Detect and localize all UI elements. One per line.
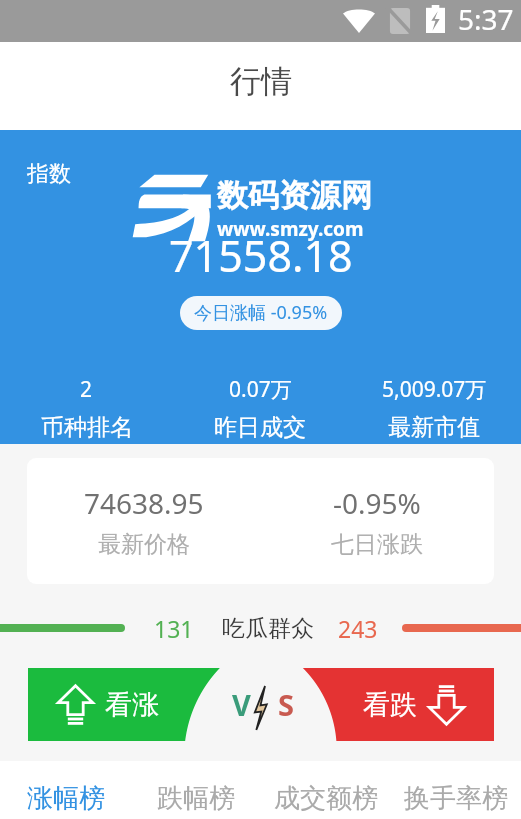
staticText: 看跌: [363, 688, 417, 722]
staticText: 71558.18: [169, 226, 353, 285]
staticText: 昨日成交: [214, 413, 306, 442]
staticText: 5:37: [458, 0, 514, 38]
staticText: 0.07万: [229, 375, 292, 404]
button[interactable]: 74638.95: [27, 458, 494, 584]
button[interactable]: 看跌: [324, 668, 494, 741]
staticText: 最新市值: [388, 413, 480, 442]
staticText: 跌幅榜: [157, 782, 235, 815]
staticText: 七日涨跌: [331, 530, 423, 559]
staticText: 2: [80, 375, 93, 404]
staticText: 数码资源网: [217, 176, 372, 215]
staticText: 5,009.07万: [382, 375, 487, 404]
staticText: -0.95%: [333, 484, 421, 522]
other: 对战: [253, 686, 268, 730]
staticText: 243: [338, 613, 378, 644]
staticText: 74638.95: [84, 484, 204, 522]
button[interactable]: 成交额榜: [261, 778, 391, 819]
button[interactable]: 跌幅榜: [131, 778, 261, 819]
staticText: 指数: [27, 160, 71, 188]
button[interactable]: 看涨: [28, 668, 198, 741]
staticText: 131: [154, 613, 194, 644]
staticText: 吃瓜群众: [222, 614, 314, 643]
staticText: 行情: [230, 62, 292, 101]
staticText: 成交额榜: [274, 782, 378, 815]
staticText: 今日涨幅 -0.95%: [194, 300, 328, 325]
staticText: S: [278, 685, 294, 724]
staticText: V: [232, 685, 251, 724]
button[interactable]: 2: [0, 375, 173, 442]
button[interactable]: 5,009.07万: [347, 375, 521, 442]
staticText: 最新价格: [98, 530, 190, 559]
staticText: 涨幅榜: [27, 782, 105, 815]
button[interactable]: 涨幅榜: [0, 778, 131, 819]
button[interactable]: 0.07万: [173, 375, 347, 442]
staticText: 换手率榜: [404, 782, 508, 815]
button[interactable]: 今日涨幅 -0.95%: [180, 296, 342, 330]
staticText: www.smzy.com: [217, 216, 364, 242]
staticText: 看涨: [105, 688, 159, 722]
staticText: 币种排名: [41, 413, 133, 442]
button[interactable]: 换手率榜: [391, 778, 521, 819]
